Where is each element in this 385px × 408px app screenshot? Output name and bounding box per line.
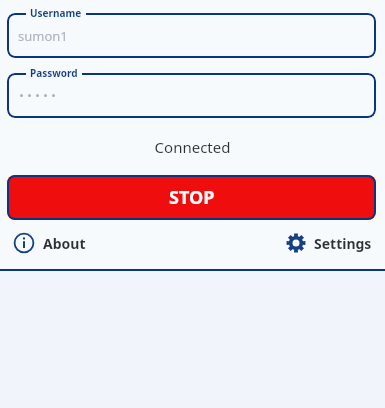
button[interactable]: STOP [7, 175, 376, 220]
button[interactable]: About [14, 227, 86, 259]
staticText: Username [30, 6, 82, 20]
staticText: Settings [314, 234, 372, 253]
button[interactable] [7, 13, 376, 58]
staticText: Password [30, 66, 78, 80]
staticText: Connected [0, 137, 385, 157]
staticText: About [43, 234, 86, 253]
button[interactable]: Settings [286, 227, 372, 259]
staticText: STOP [169, 185, 215, 210]
staticText: sumon1 [18, 27, 68, 45]
button[interactable] [7, 73, 376, 118]
